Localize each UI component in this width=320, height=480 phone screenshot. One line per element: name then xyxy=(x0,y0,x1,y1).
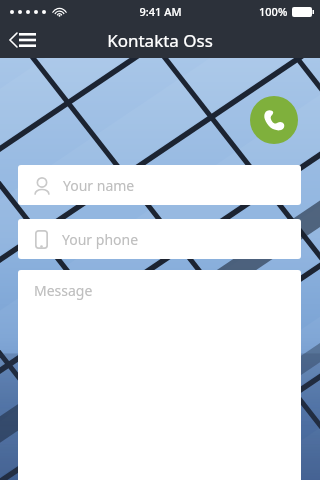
staticText: Your name xyxy=(63,176,135,195)
staticText: Message xyxy=(34,281,93,300)
button[interactable]: Your phone xyxy=(18,219,301,259)
staticText: 100% xyxy=(259,4,288,19)
button[interactable]: Your name xyxy=(18,165,301,205)
button[interactable]: Menu xyxy=(6,27,40,53)
staticText: Kontakta Oss xyxy=(107,29,213,52)
button[interactable]: Message xyxy=(18,270,301,480)
staticText: 9:41 AM xyxy=(139,4,182,19)
staticText: Your phone xyxy=(62,230,139,249)
button[interactable]: Call xyxy=(250,96,298,144)
